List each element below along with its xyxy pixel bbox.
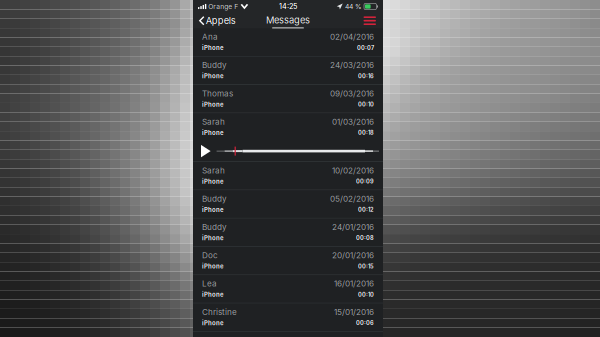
staticText: Sarah [202,165,225,175]
staticText: iPhone [202,72,224,80]
staticText: 00:07 [357,44,374,51]
staticText: 00:18 [358,129,374,136]
staticText: 24/03/2016 [330,60,374,70]
staticText: iPhone [202,234,224,242]
staticText: 00:09 [356,178,374,185]
staticText: 15/01/2016 [334,307,374,317]
staticText: 20/01/2016 [332,250,374,260]
staticText: iPhone [202,44,224,51]
staticText: Thomas [202,88,233,98]
staticText: Doc [202,250,218,260]
button[interactable]: Appels [193,13,240,28]
button[interactable]: Doc [193,247,383,274]
button[interactable]: Buddy [193,57,383,84]
button[interactable]: Menu [356,13,383,28]
staticText: iPhone [202,319,224,327]
staticText: 01/03/2016 [332,117,374,127]
staticText: iPhone [202,263,224,270]
staticText: Buddy [202,222,227,232]
button[interactable]: Ana [193,28,383,56]
staticText: 16/01/2016 [334,279,374,288]
staticText: 05/02/2016 [330,194,374,204]
staticText: 44 % [343,2,364,11]
button[interactable]: Buddy [193,190,383,218]
staticText: 02/04/2016 [330,32,374,42]
staticText: 24/01/2016 [332,222,374,232]
staticText: Appels [206,15,236,26]
staticText: Christine [202,307,237,317]
staticText: iPhone [202,206,224,213]
staticText: 00:08 [356,235,374,241]
staticText: 00:06 [356,320,374,326]
staticText: 00:16 [358,73,374,80]
staticText: 00:15 [358,263,374,270]
staticText: Orange F [206,2,240,11]
staticText: Sarah [202,117,225,127]
staticText: iPhone [202,291,224,298]
button[interactable]: Christine [193,303,383,331]
staticText: 00:10 [358,291,374,298]
button[interactable]: Thomas [193,85,383,113]
button[interactable]: Play [193,141,217,161]
button[interactable]: Sarah [193,113,383,141]
staticText: Lea [202,279,217,288]
button[interactable]: Buddy [193,219,383,246]
staticText: 14:25 [279,2,297,11]
staticText: iPhone [202,129,224,136]
staticText: 10/02/2016 [332,165,374,175]
staticText: Ana [202,32,218,42]
staticText: Messages [266,15,310,26]
staticText: iPhone [202,178,224,185]
staticText: 00:10 [358,101,374,108]
staticText: iPhone [202,101,224,108]
button[interactable]: Sarah [193,162,383,190]
staticText: Buddy [202,60,227,70]
staticText: 09/03/2016 [330,88,374,98]
button[interactable]: Lea [193,275,383,303]
staticText: 00:12 [358,206,374,213]
staticText: Buddy [202,194,227,204]
